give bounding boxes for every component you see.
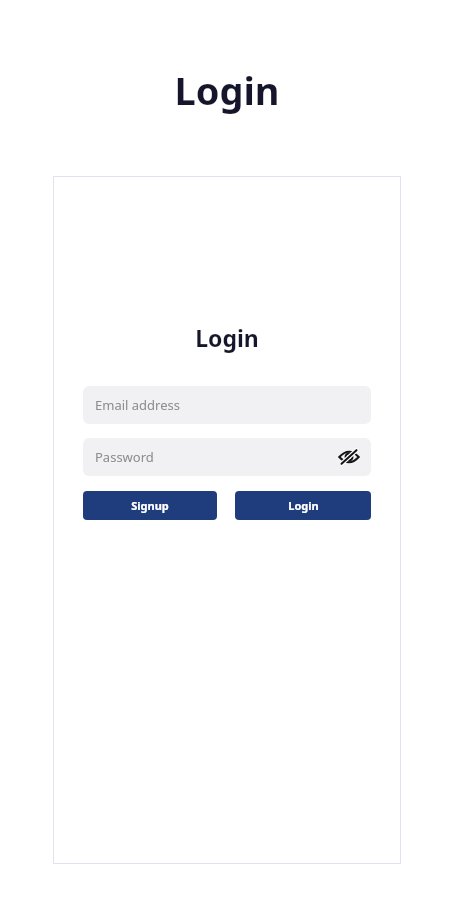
button[interactable]: Password [83,438,371,476]
staticText: Email address [95,396,180,414]
button[interactable]: Toggle password visibility [334,442,364,472]
staticText: Signup [131,498,169,513]
button[interactable]: Signup [83,491,217,520]
staticText: Login [195,322,259,353]
button[interactable]: Login [235,491,371,520]
staticText: Login [174,64,280,116]
staticText: Login [288,498,319,513]
button[interactable]: Email address [83,386,371,424]
staticText: Password [95,448,154,466]
